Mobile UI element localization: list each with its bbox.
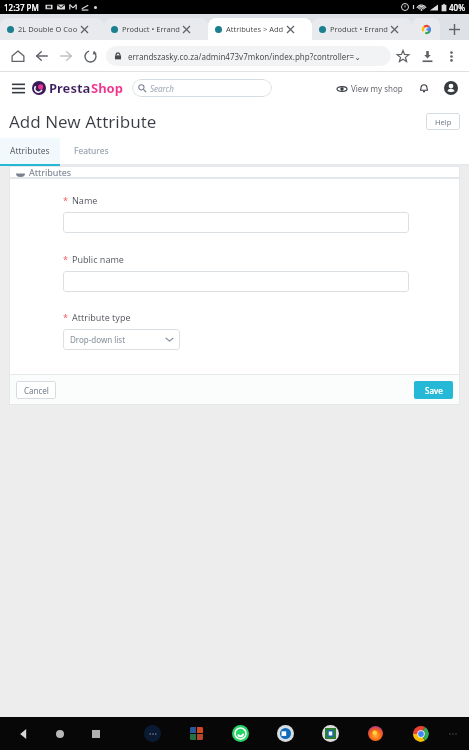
staticText: Help xyxy=(435,117,452,127)
button[interactable]: Search xyxy=(132,79,272,97)
button[interactable]: Attributes xyxy=(0,138,60,164)
button[interactable]: Download xyxy=(415,44,439,68)
button[interactable]: Bookmark xyxy=(391,44,415,68)
button[interactable]: App xyxy=(174,717,218,750)
button[interactable]: Home xyxy=(6,44,30,68)
staticText: Cancel xyxy=(24,385,49,396)
staticText: Public name xyxy=(72,253,124,265)
button[interactable]: View my shop xyxy=(335,83,405,94)
button[interactable]: Account xyxy=(441,78,461,98)
button[interactable]: Menu xyxy=(8,78,28,98)
staticText: Features xyxy=(74,145,109,157)
staticText: Attributes xyxy=(10,145,50,157)
staticText: Shop xyxy=(91,79,123,97)
staticText: * xyxy=(63,194,68,206)
staticText: Save xyxy=(425,385,443,396)
button[interactable]: App xyxy=(398,717,443,750)
button[interactable]: Name xyxy=(63,212,409,233)
button[interactable]: Forward xyxy=(54,44,78,68)
staticText: errandszasky.co.za/admin473v7mkon/index.… xyxy=(128,51,361,62)
button[interactable]: errandszasky.co.za/admin473v7mkon/index.… xyxy=(106,46,391,66)
button[interactable]: Drop-down list xyxy=(63,329,180,350)
staticText: Product • Errand xyxy=(330,24,388,34)
button[interactable]: Notifications xyxy=(415,79,433,97)
staticText: 2L Double O Coo xyxy=(18,24,78,34)
button[interactable]: Recents xyxy=(78,717,114,750)
staticText: Presta xyxy=(49,79,91,97)
button[interactable]: Cancel xyxy=(16,381,56,399)
staticText: * xyxy=(63,311,68,323)
button[interactable]: App xyxy=(263,717,308,750)
button[interactable]: App xyxy=(218,717,263,750)
staticText: Drop-down list xyxy=(70,334,126,345)
button[interactable]: Features xyxy=(60,138,122,164)
button[interactable]: Presta xyxy=(32,79,123,97)
button[interactable]: Reload xyxy=(78,44,102,68)
staticText: 40% xyxy=(449,2,465,13)
staticText: 12:37 PM xyxy=(4,2,39,13)
button[interactable]: App xyxy=(308,717,353,750)
staticText: View my shop xyxy=(351,83,403,94)
staticText: Search xyxy=(150,83,174,94)
button[interactable]: Back xyxy=(6,717,42,750)
staticText: Name xyxy=(72,194,98,206)
button[interactable]: Product • Errand xyxy=(104,18,208,40)
button[interactable]: Save xyxy=(414,381,453,399)
staticText: Add New Attribute xyxy=(9,110,157,133)
button[interactable]: App xyxy=(353,717,398,750)
button[interactable]: Attributes > Add xyxy=(208,18,312,40)
button[interactable]: More options xyxy=(439,44,463,68)
button[interactable]: Help xyxy=(426,113,460,130)
staticText: Product • Errand xyxy=(122,24,180,34)
button[interactable]: App xyxy=(130,717,174,750)
button[interactable]: Google tab xyxy=(412,18,440,40)
staticText: Attribute type xyxy=(72,311,131,323)
staticText: * xyxy=(63,253,68,265)
button[interactable]: Product • Errand xyxy=(312,18,412,40)
button[interactable]: Public name xyxy=(63,271,409,292)
staticText: Attributes xyxy=(29,166,72,178)
button[interactable]: New tab xyxy=(440,18,469,40)
button[interactable]: Back xyxy=(30,44,54,68)
button[interactable]: 2L Double O Coo xyxy=(0,18,104,40)
button[interactable]: Home xyxy=(42,717,78,750)
staticText: Attributes > Add xyxy=(226,24,284,34)
